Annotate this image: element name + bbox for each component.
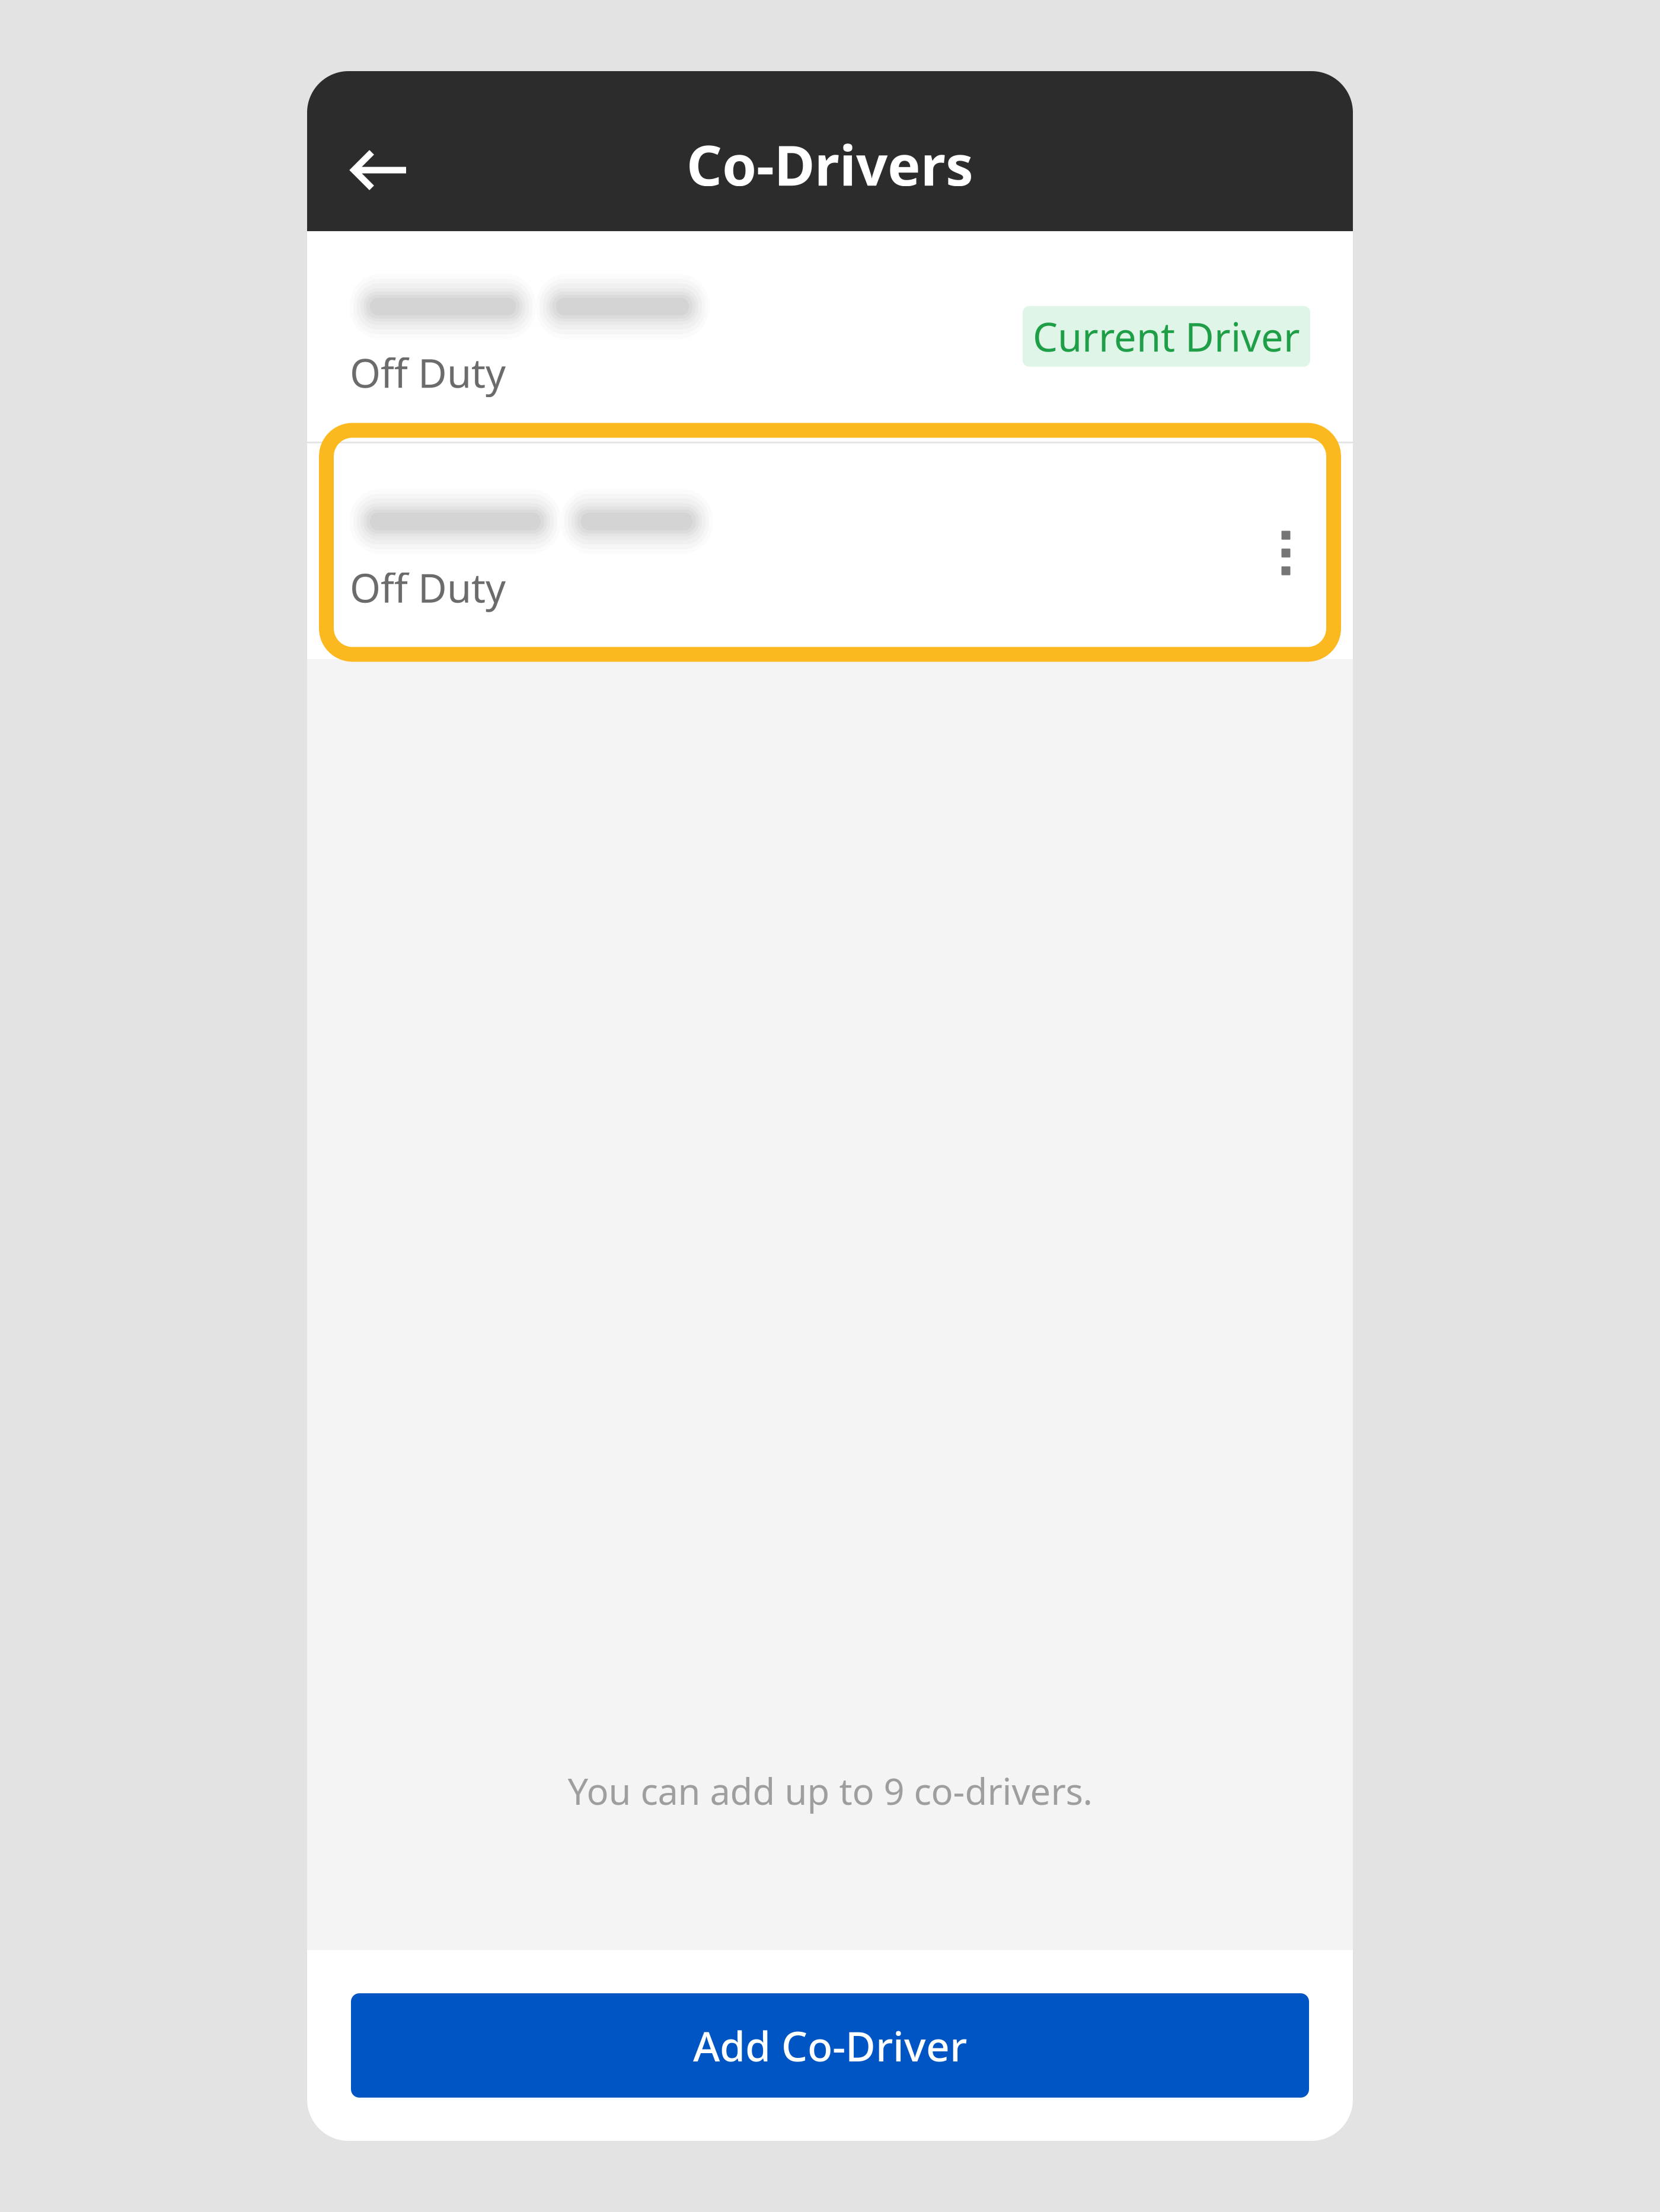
staticText: Off Duty [350,561,506,614]
staticText: Add Co-Driver [693,2018,967,2073]
button[interactable]: Off Duty [307,443,1353,659]
staticText: Off Duty [350,346,506,399]
staticText: Co-Drivers [687,127,973,201]
button[interactable]: More options [1262,516,1310,587]
button[interactable]: Back [307,71,453,231]
button[interactable]: Add Co-Driver [351,1993,1309,2098]
staticText: Current Driver [1033,310,1300,363]
staticText: You can add up to 9 co-drivers. [568,1767,1092,1815]
